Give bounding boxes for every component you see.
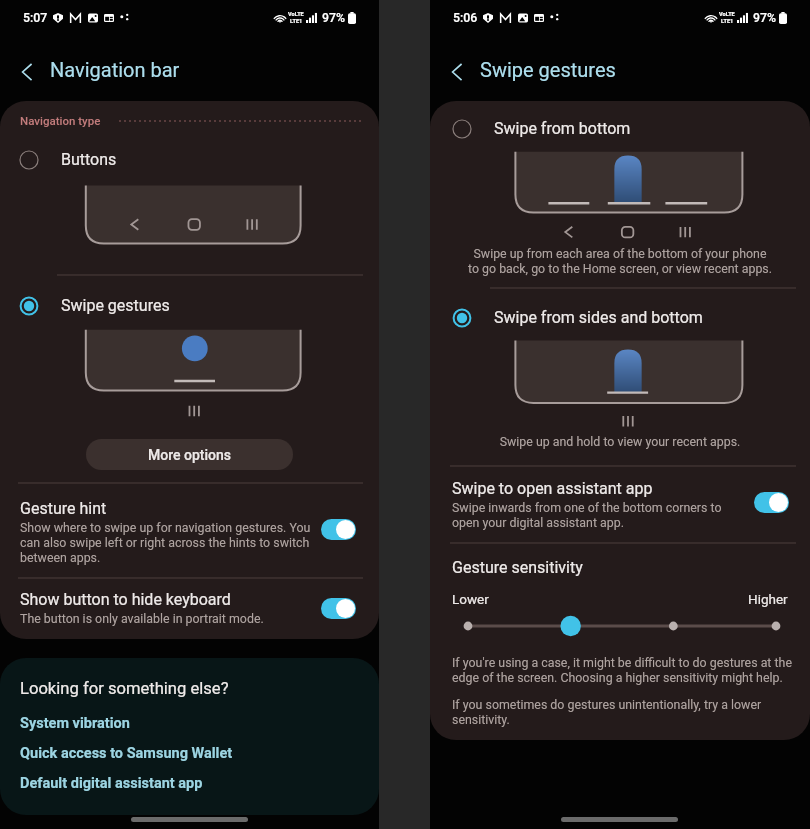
- staticText: LTE1: [721, 18, 734, 25]
- staticText: Swipe up from each area of the bottom of…: [462, 246, 778, 276]
- button[interactable]: Back: [5, 50, 49, 94]
- button[interactable]: Swipe gestures: [0, 291, 379, 320]
- staticText: 5:07: [23, 11, 48, 25]
- staticText: Swipe from sides and bottom: [494, 308, 703, 327]
- staticText: The button is only available in portrait…: [20, 611, 264, 626]
- staticText: 5:06: [453, 11, 478, 25]
- staticText: Looking for something else?: [20, 679, 229, 698]
- staticText: 97%: [753, 11, 777, 25]
- button[interactable]: System vibration: [20, 715, 130, 732]
- staticText: Gesture hint: [20, 499, 107, 518]
- staticText: Higher: [748, 591, 788, 607]
- staticText: LTE1: [290, 18, 303, 25]
- button[interactable]: Swipe from sides and bottom: [430, 303, 810, 332]
- button[interactable]: Swipe to open assistant app: [430, 476, 810, 540]
- staticText: Show where to swipe up for navigation ge…: [20, 520, 316, 565]
- staticText: Gesture sensitivity: [452, 558, 583, 577]
- button[interactable]: Toggle on: [321, 598, 356, 619]
- button[interactable]: Toggle on: [754, 492, 789, 513]
- staticText: 97%: [322, 11, 346, 25]
- staticText: Buttons: [61, 150, 117, 169]
- staticText: Default digital assistant app: [20, 775, 203, 792]
- staticText: Swipe inwards from one of the bottom cor…: [452, 500, 732, 530]
- staticText: Navigation bar: [50, 58, 180, 81]
- button[interactable]: Default digital assistant app: [20, 775, 203, 792]
- staticText: Show button to hide keyboard: [20, 590, 231, 609]
- button[interactable]: Gesture hint: [0, 496, 379, 576]
- staticText: Lower: [452, 591, 489, 607]
- button[interactable]: Swipe from bottom: [430, 114, 810, 143]
- staticText: Quick access to Samsung Wallet: [20, 745, 233, 762]
- staticText: More options: [148, 447, 232, 463]
- staticText: Navigation type: [20, 114, 101, 127]
- button[interactable]: Show button to hide keyboard: [0, 587, 379, 637]
- staticText: If you're using a case, it might be diff…: [452, 655, 798, 685]
- staticText: Swipe to open assistant app: [452, 479, 653, 498]
- staticText: Swipe gestures: [480, 58, 616, 81]
- button[interactable]: Back: [435, 50, 479, 94]
- staticText: Swipe up and hold to view your recent ap…: [462, 434, 778, 449]
- button[interactable]: Quick access to Samsung Wallet: [20, 745, 233, 762]
- staticText: VoLTE: [719, 11, 735, 18]
- button[interactable]: More options: [86, 439, 293, 470]
- staticText: Swipe from bottom: [494, 119, 631, 138]
- staticText: VoLTE: [288, 11, 304, 18]
- button[interactable]: Buttons: [0, 145, 379, 174]
- staticText: System vibration: [20, 715, 130, 732]
- staticText: If you sometimes do gestures unintention…: [452, 697, 772, 727]
- staticText: Swipe gestures: [61, 296, 170, 315]
- button[interactable]: Toggle on: [321, 519, 356, 540]
